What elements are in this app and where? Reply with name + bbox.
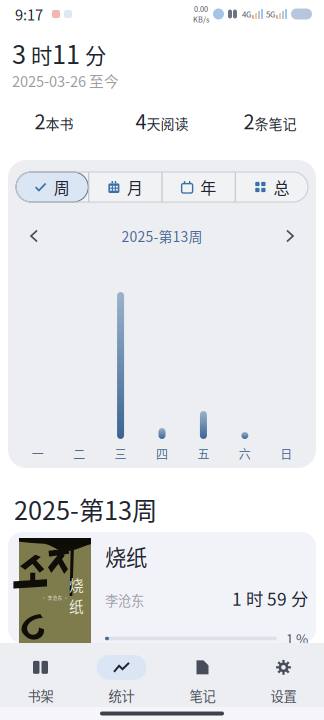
staticText: 一: [32, 445, 44, 462]
staticText: 五: [197, 445, 209, 462]
staticText: 周: [54, 175, 70, 199]
button[interactable]: 上一周: [17, 219, 51, 253]
staticText: 月: [127, 175, 143, 199]
staticText: 时: [26, 39, 52, 70]
button[interactable]: 设置: [243, 655, 324, 705]
staticText: 2025-第13周: [14, 491, 157, 527]
button[interactable]: 书架: [0, 655, 81, 705]
staticText: 总: [273, 175, 289, 199]
button[interactable]: 下一周: [273, 219, 307, 253]
button[interactable]: 总: [236, 172, 308, 202]
button[interactable]: 月: [89, 172, 161, 202]
staticText: 纸: [69, 595, 84, 616]
staticText: 六: [239, 445, 251, 462]
button[interactable]: 笔记: [162, 655, 243, 705]
staticText: 2: [243, 106, 254, 135]
staticText: 年: [200, 175, 216, 199]
button[interactable]: 周: [16, 172, 88, 202]
button[interactable]: 统计: [81, 655, 162, 705]
staticText: 分: [80, 39, 106, 70]
staticText: 2025-第13周: [121, 226, 202, 246]
staticText: 统计: [108, 686, 134, 705]
staticText: 书架: [27, 686, 53, 705]
staticText: 烧纸: [105, 541, 147, 572]
staticText: 笔记: [189, 686, 215, 705]
staticText: 1 时 59 分: [232, 586, 308, 611]
staticText: 0.00: [194, 3, 208, 14]
staticText: 5G: [266, 8, 276, 20]
staticText: 条笔记: [254, 113, 296, 133]
staticText: 三: [115, 445, 127, 462]
staticText: 天阅读: [146, 113, 188, 133]
staticText: 11: [52, 35, 80, 71]
staticText: · 李沧东 ·: [41, 594, 68, 601]
staticText: KB/s: [193, 14, 209, 25]
staticText: 3: [12, 35, 26, 71]
staticText: 4: [135, 106, 146, 135]
staticText: 本书: [45, 113, 73, 133]
staticText: 烧: [69, 574, 84, 595]
button[interactable]: 烧: [8, 532, 316, 643]
staticText: 2: [34, 106, 45, 135]
staticText: 1 %: [286, 629, 308, 648]
staticText: 4G: [242, 8, 252, 20]
staticText: 李沧东: [105, 590, 144, 610]
staticText: 设置: [270, 686, 296, 705]
staticText: 二: [73, 445, 85, 462]
staticText: 日: [280, 445, 292, 462]
staticText: 9:17: [15, 3, 43, 25]
button[interactable]: 年: [162, 172, 235, 202]
staticText: 2025-03-26 至今: [12, 70, 119, 91]
staticText: 四: [156, 445, 168, 462]
